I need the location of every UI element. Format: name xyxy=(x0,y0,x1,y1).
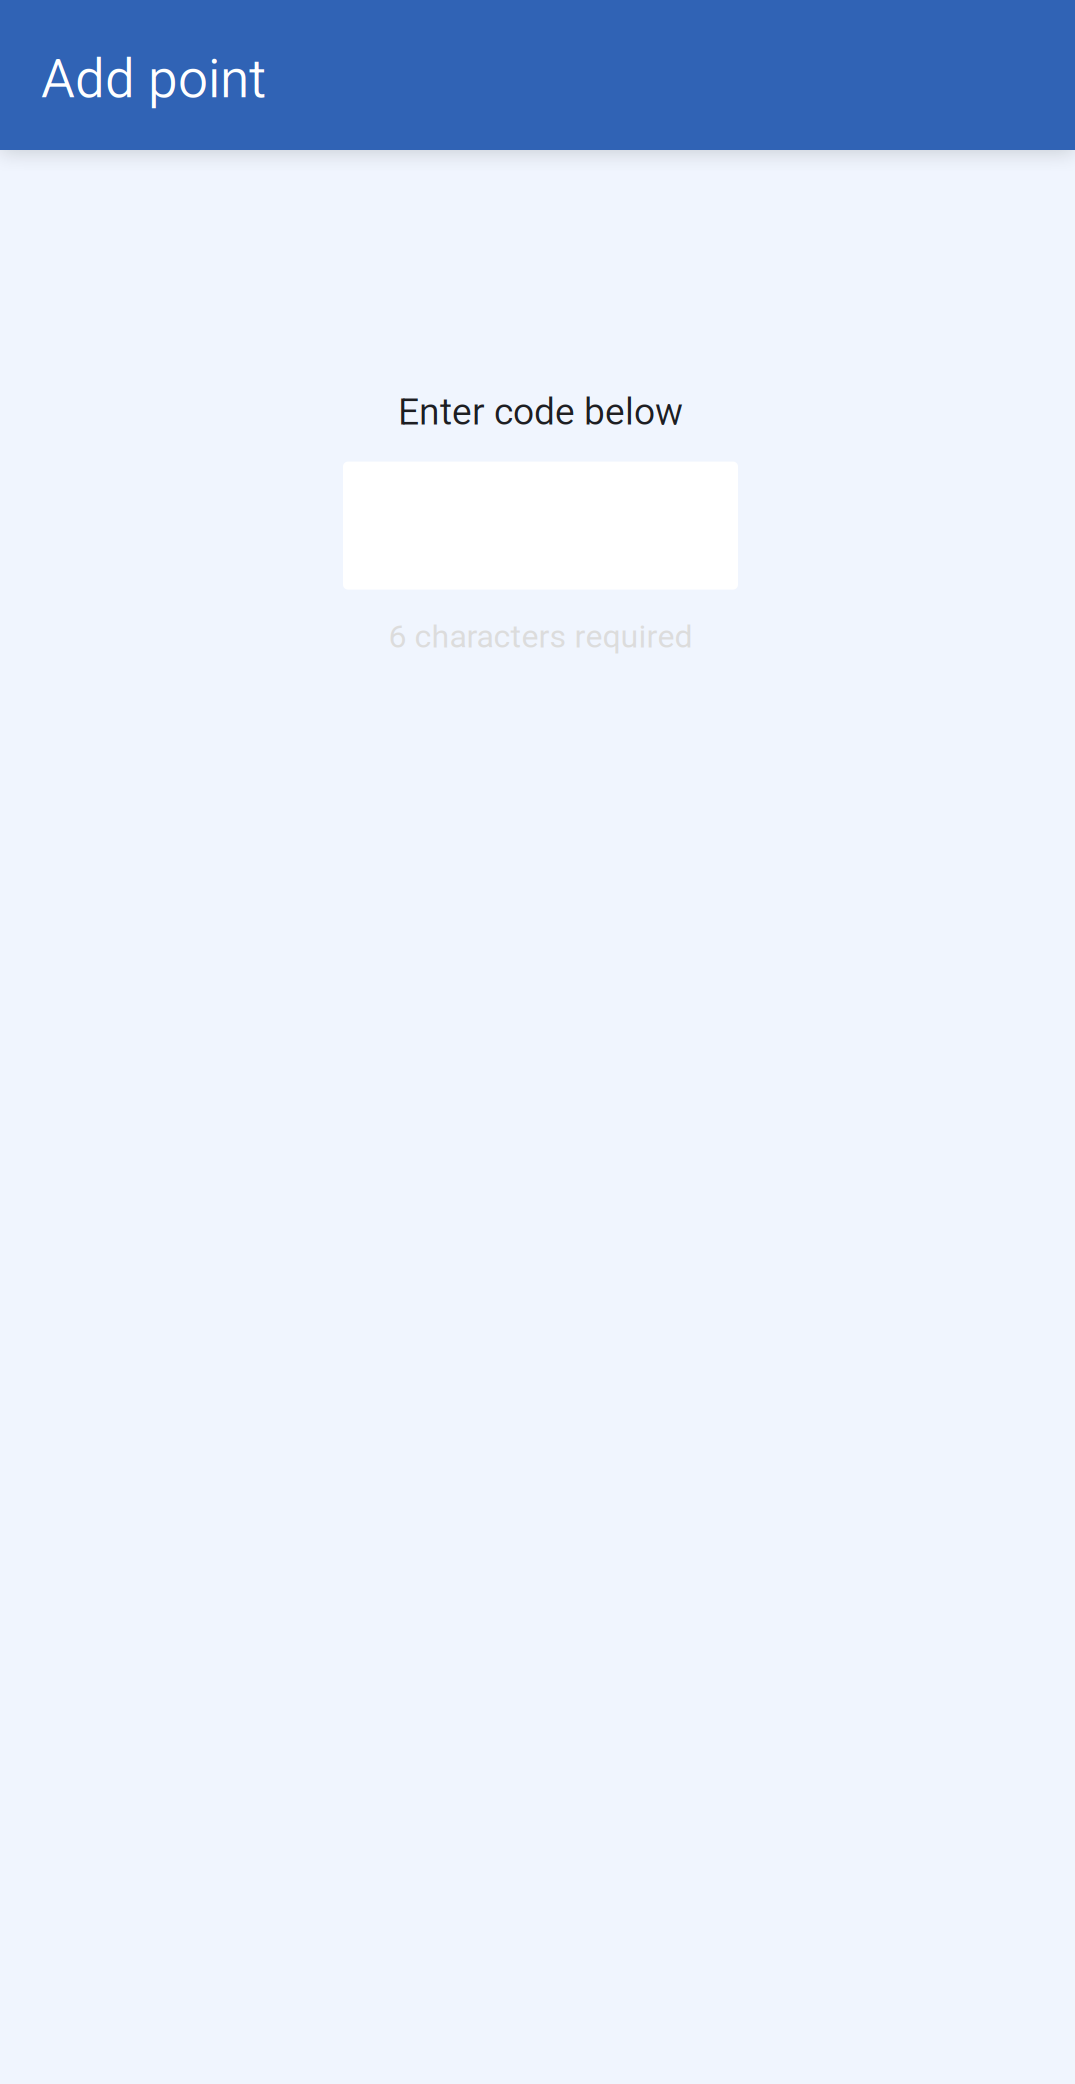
staticText: 6 characters required xyxy=(388,618,692,655)
staticText: Add point xyxy=(41,48,266,110)
staticText: Enter code below xyxy=(398,390,683,434)
